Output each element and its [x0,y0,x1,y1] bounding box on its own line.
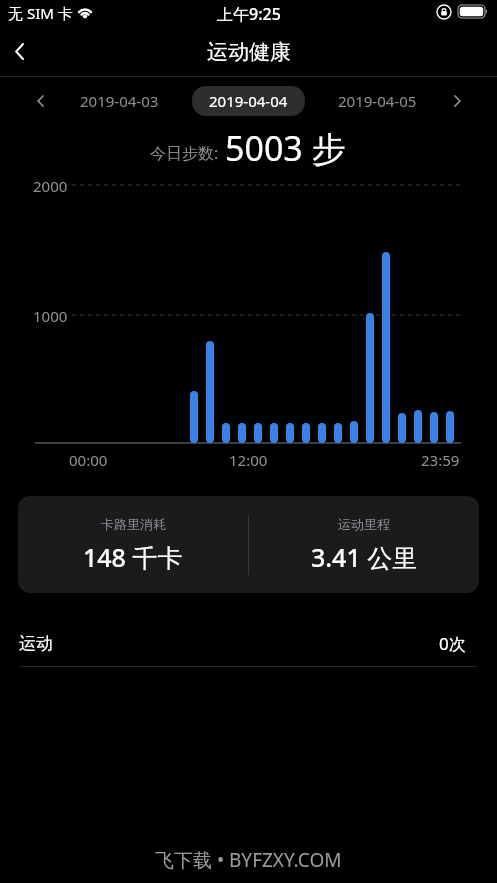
staticText: 上午9:25 [217,3,281,25]
staticText: 2019-04-05 [338,91,417,111]
staticText: 今日步数: [150,142,223,164]
button[interactable]: 2019-04-05 [338,91,417,111]
staticText: 148 千卡 [83,540,183,574]
staticText: 3.41 公里 [311,540,418,574]
button[interactable] [28,89,52,113]
staticText: 12:00 [229,450,268,470]
staticText: 运动健康 [207,39,291,65]
staticText: 运动里程 [338,516,390,532]
staticText: 卡路里消耗 [101,516,166,532]
button[interactable]: 2019-04-03 [80,91,159,111]
staticText: 00:00 [69,450,108,470]
staticText: 运动 [19,633,53,654]
staticText: 1000 [33,306,68,326]
staticText: 23:59 [421,450,460,470]
button[interactable]: 运动 [0,619,497,667]
button[interactable]: 2019-04-04 [192,86,305,116]
staticText: 飞下载 • BYFZXY.COM [155,847,342,873]
staticText: 无 SIM 卡 [8,3,73,23]
button[interactable] [445,89,469,113]
staticText: 0次 [439,632,466,655]
button[interactable]: 卡路里消耗 [18,496,479,593]
staticText: 5003 步 [225,125,346,171]
staticText: 2019-04-04 [209,91,288,111]
staticText: 2000 [33,176,68,196]
staticText: 2019-04-03 [80,91,159,111]
button[interactable] [2,34,36,68]
